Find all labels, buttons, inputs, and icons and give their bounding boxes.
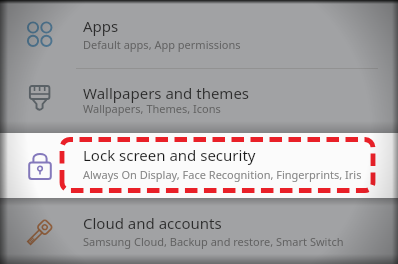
button[interactable]: Cloud and accounts: [0, 198, 398, 264]
staticText: Cloud and accounts: [83, 213, 222, 233]
staticText: Lock screen and security: [83, 145, 256, 165]
button[interactable]: Apps: [0, 0, 398, 69]
staticText: Samsung Cloud, Backup and restore, Smart…: [83, 234, 344, 249]
button[interactable]: Lock screen and security: [0, 133, 398, 198]
button[interactable]: Wallpapers and themes: [0, 69, 398, 133]
staticText: Apps: [83, 16, 119, 36]
staticText: Wallpapers, Themes, Icons: [83, 101, 221, 116]
staticText: Wallpapers and themes: [83, 83, 250, 103]
staticText: Default apps, App permissions: [83, 37, 241, 52]
staticText: Always On Display, Face Recognition, Fin…: [83, 167, 362, 182]
